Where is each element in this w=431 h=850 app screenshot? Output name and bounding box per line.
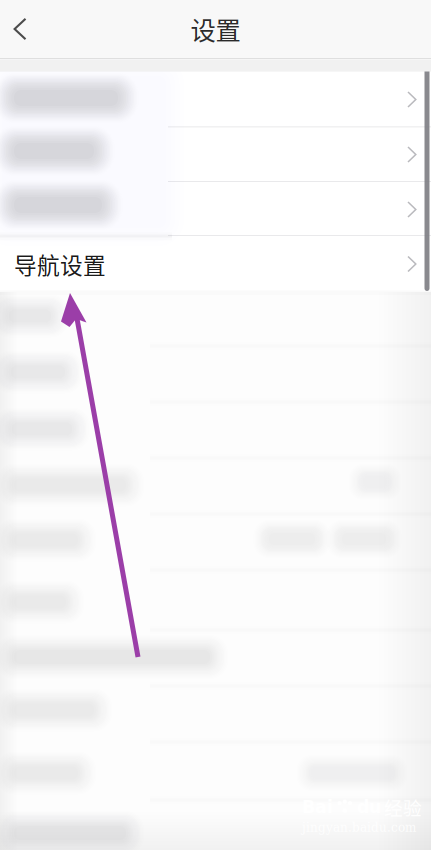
staticText: jingyan.baidu.com: [302, 820, 416, 834]
button[interactable]: Setting: [0, 127, 431, 182]
staticText: 导航设置: [14, 248, 106, 280]
button[interactable]: Setting: [0, 182, 431, 237]
staticText: 设置: [190, 11, 240, 47]
button[interactable]: 导航设置: [0, 236, 431, 291]
staticText: 经验: [384, 793, 422, 820]
button[interactable]: Setting: [0, 72, 431, 127]
button[interactable]: Back: [0, 0, 43, 57]
